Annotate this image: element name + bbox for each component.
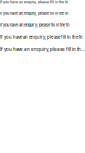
staticText: If you have an enquiry, please fill in t…	[0, 47, 85, 52]
staticText: If you have an enquiry, please fill in t…	[0, 35, 83, 40]
staticText: If you have an enquiry, please fill in t…	[0, 11, 68, 16]
staticText: If you have an enquiry, please fill in t…	[0, 0, 68, 4]
staticText: If you have an enquiry, please fill in t…	[0, 23, 69, 27]
